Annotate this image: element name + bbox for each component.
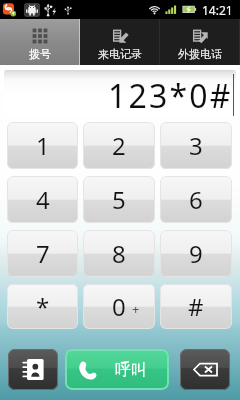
button[interactable]: 9 bbox=[160, 230, 232, 277]
staticText: 2 bbox=[112, 129, 126, 162]
button[interactable]: 8 bbox=[83, 230, 155, 277]
staticText: * bbox=[36, 290, 50, 323]
staticText: 外拨电话 bbox=[178, 47, 222, 61]
button[interactable]: 0 bbox=[83, 284, 155, 329]
button[interactable]: 123*0# bbox=[4, 70, 236, 116]
button[interactable]: 1 bbox=[7, 122, 78, 169]
button[interactable]: 外拨电话 bbox=[160, 19, 240, 65]
staticText: 9 bbox=[189, 237, 203, 270]
button[interactable]: 3 bbox=[160, 122, 232, 169]
button[interactable]: Contacts bbox=[8, 349, 58, 390]
staticText: 来电记录 bbox=[98, 47, 142, 61]
staticText: 8 bbox=[112, 237, 126, 270]
staticText: 拨号 bbox=[29, 47, 51, 61]
staticText: 3 bbox=[189, 129, 203, 162]
button[interactable]: Backspace bbox=[180, 349, 230, 390]
button[interactable]: # bbox=[160, 284, 232, 329]
staticText: 5 bbox=[112, 183, 126, 216]
staticText: 123*0# bbox=[108, 74, 233, 116]
button[interactable]: 呼叫 bbox=[65, 349, 169, 390]
button[interactable]: 6 bbox=[160, 176, 232, 223]
button[interactable]: 拨号 bbox=[0, 19, 80, 65]
staticText: 6 bbox=[189, 183, 203, 216]
staticText: # bbox=[188, 290, 204, 323]
button[interactable]: 来电记录 bbox=[80, 19, 160, 65]
staticText: 4 bbox=[36, 183, 50, 216]
staticText: 1 bbox=[36, 129, 50, 162]
staticText: 0 bbox=[112, 290, 126, 323]
staticText: 14:21 bbox=[202, 2, 233, 18]
button[interactable]: 5 bbox=[83, 176, 155, 223]
staticText: 7 bbox=[36, 237, 50, 270]
staticText: 呼叫 bbox=[115, 360, 147, 380]
button[interactable]: 7 bbox=[7, 230, 78, 277]
button[interactable]: 4 bbox=[7, 176, 78, 223]
button[interactable]: 2 bbox=[83, 122, 155, 169]
button[interactable]: * bbox=[7, 284, 78, 329]
staticText: + bbox=[132, 300, 140, 318]
